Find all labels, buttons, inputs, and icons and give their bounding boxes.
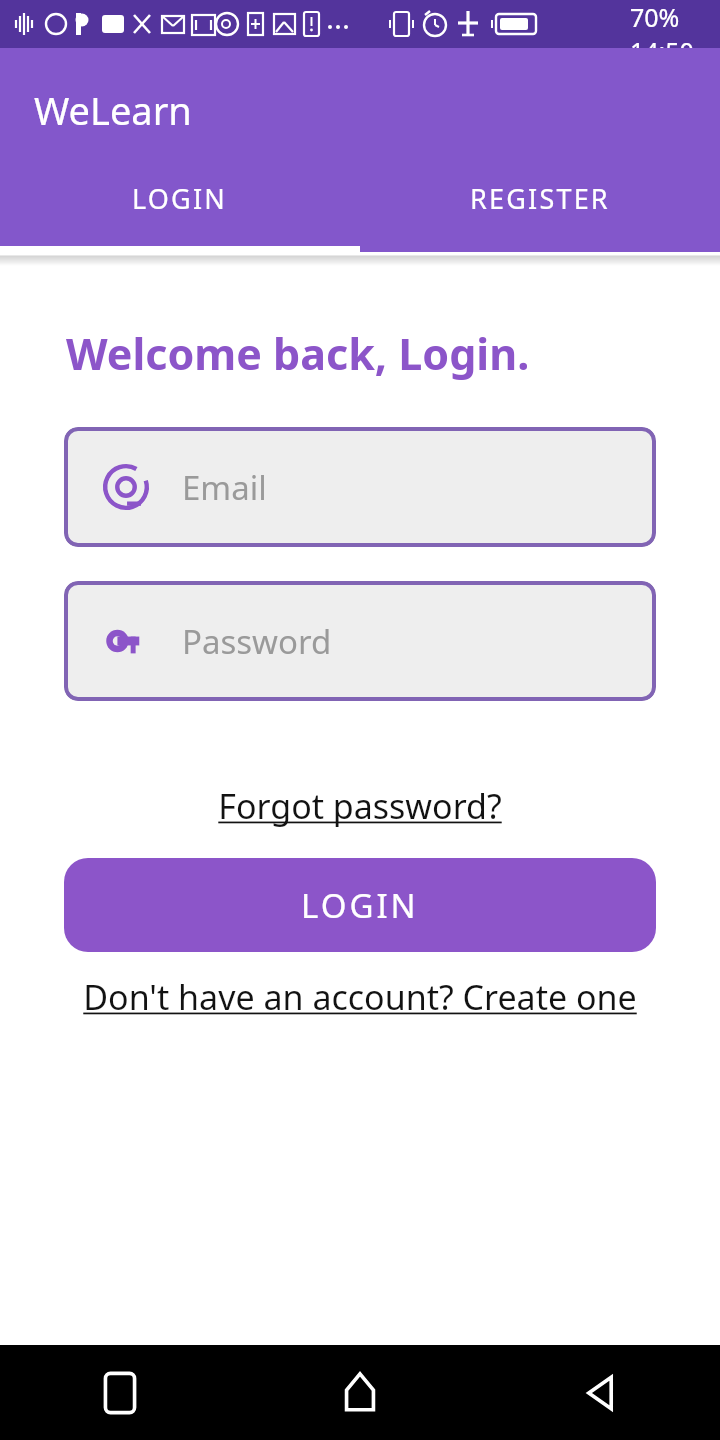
button[interactable]: Recents [0, 1345, 240, 1440]
button[interactable]: Home [240, 1345, 480, 1440]
staticText: Welcome back, Login. [66, 324, 720, 383]
button[interactable]: Back [480, 1345, 720, 1440]
button[interactable]: Forgot password? [210, 779, 510, 833]
button[interactable]: Email [64, 427, 656, 547]
button[interactable]: Password [64, 581, 656, 701]
staticText: REGISTER [470, 180, 610, 217]
staticText: LOGIN [301, 883, 419, 928]
staticText: Password [182, 619, 332, 664]
button[interactable]: LOGIN [64, 858, 656, 952]
staticText: Don't have an account? Create one [83, 974, 637, 1020]
staticText: 70% 14:50 [630, 0, 708, 48]
staticText: LOGIN [132, 180, 228, 217]
staticText: Email [182, 465, 267, 510]
button[interactable]: Don't have an account? Create one [77, 970, 643, 1024]
button[interactable]: LOGIN [0, 162, 360, 252]
staticText: Forgot password? [218, 783, 502, 829]
staticText: WeLearn [34, 84, 192, 136]
button[interactable]: REGISTER [360, 162, 720, 252]
